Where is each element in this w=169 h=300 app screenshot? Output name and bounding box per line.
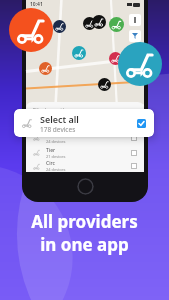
staticText: 24 devices [46,167,66,172]
staticText: 10:41 [30,1,43,8]
staticText: 24 devices [46,139,66,144]
button[interactable]: Tier [26,145,144,160]
staticText: 178 devices [40,125,76,134]
button[interactable]: Scooter [109,52,122,65]
button[interactable]: Scooter [109,17,124,32]
button[interactable]: Scooter [92,15,106,29]
staticText: 21 devices [46,154,66,159]
button[interactable]: Filter [129,30,141,42]
button[interactable]: Scooter [98,78,111,91]
staticText: in one app [40,233,129,256]
button[interactable]: Scooter [53,20,66,33]
button[interactable]: Circ [26,160,144,172]
button[interactable]: Scooter provider [118,42,162,86]
button[interactable]: Layers [129,14,141,26]
button[interactable]: Scooter [39,62,52,75]
button[interactable]: Scooter [72,46,86,60]
staticText: Lime [46,132,58,139]
staticText: Tier [46,147,56,154]
staticText: Circ [46,160,55,167]
button[interactable]: Home [77,178,94,195]
staticText: Select all [40,113,79,125]
button[interactable]: Lime [26,130,144,145]
button[interactable]: Scooter provider [9,8,53,52]
button[interactable]: Select all [14,109,154,137]
staticText: Filter by provider [33,107,69,113]
staticText: All providers [31,210,138,233]
button[interactable]: Scooter [83,17,96,30]
